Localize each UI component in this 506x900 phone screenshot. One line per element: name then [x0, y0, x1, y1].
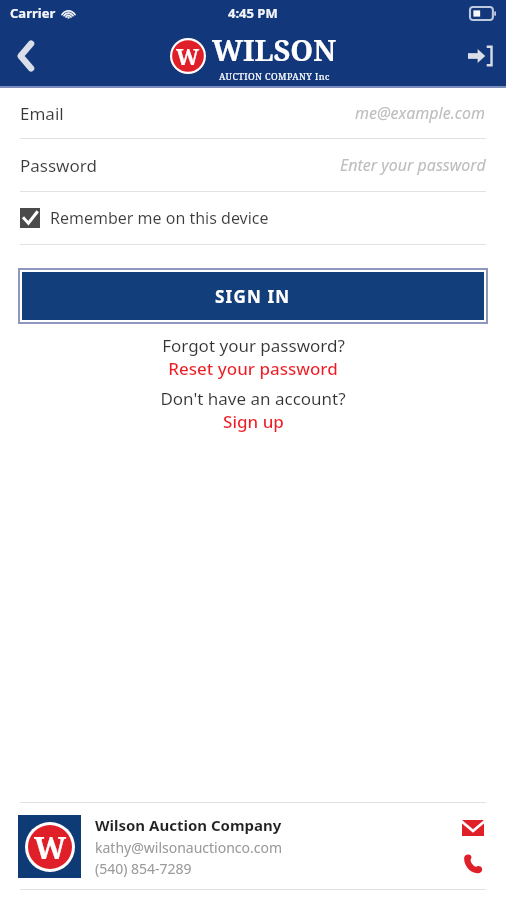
staticText: Don't have an account? [160, 387, 346, 410]
staticText: me@example.com [355, 102, 486, 124]
button[interactable]: Remember me on this device [0, 192, 506, 244]
staticText: W [176, 42, 200, 71]
button[interactable]: Password [0, 139, 506, 191]
staticText: Email [20, 102, 64, 125]
staticText: W [34, 827, 67, 868]
button[interactable]: Back [0, 31, 52, 81]
button[interactable]: Sign in [454, 31, 506, 81]
staticText: Sign up [223, 410, 284, 433]
staticText: Forgot your password? [162, 334, 345, 357]
button[interactable]: Send email [458, 813, 488, 843]
staticText: kathy@wilsonauctionco.com [95, 838, 283, 857]
button[interactable]: Reset your password [168, 357, 338, 380]
button[interactable]: Sign up [223, 410, 284, 433]
staticText: Password [20, 154, 97, 177]
button[interactable]: Email [0, 88, 506, 138]
staticText: Reset your password [168, 357, 338, 380]
staticText: AUCTION COMPANY Inc [219, 70, 330, 82]
staticText: Wilson Auction Company [95, 815, 282, 835]
staticText: Carrier [10, 4, 56, 22]
button[interactable]: W [0, 803, 506, 889]
button[interactable]: SIGN IN [22, 272, 484, 320]
staticText: 4:45 PM [228, 4, 278, 22]
button[interactable]: Call [458, 849, 488, 879]
staticText: Remember me on this device [50, 207, 269, 229]
staticText: SIGN IN [215, 285, 291, 308]
staticText: (540) 854-7289 [95, 859, 192, 878]
staticText: Enter your password [340, 154, 486, 176]
staticText: WILSON [212, 30, 337, 69]
